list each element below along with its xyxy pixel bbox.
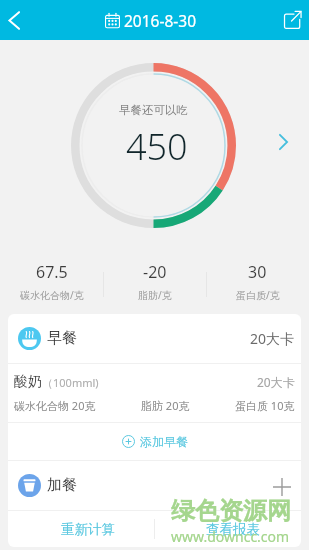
staticText: 早餐还可以吃 bbox=[119, 103, 188, 117]
staticText: 查看报表 bbox=[206, 521, 260, 538]
staticText: 蛋白质/克 bbox=[236, 288, 280, 302]
staticText: 碳水化合物 20克 bbox=[14, 398, 96, 413]
staticText: 加餐 bbox=[47, 476, 77, 495]
staticText: 绿色资源网 bbox=[171, 496, 291, 526]
staticText: 酸奶 bbox=[14, 373, 42, 391]
button[interactable]: Add snack bbox=[270, 475, 294, 499]
button[interactable]: 酸奶 bbox=[8, 364, 301, 422]
staticText: 脂肪/克 bbox=[138, 288, 172, 302]
staticText: 脂肪 20克 bbox=[141, 398, 190, 413]
button[interactable]: 添加早餐 bbox=[8, 423, 301, 460]
staticText: 20大卡 bbox=[250, 329, 295, 348]
staticText: 添加早餐 bbox=[140, 434, 188, 449]
staticText: 67.5 bbox=[36, 261, 68, 283]
button[interactable]: 加餐 bbox=[8, 461, 301, 510]
staticText: 重新计算 bbox=[61, 521, 115, 538]
staticText: 20大卡 bbox=[257, 374, 295, 390]
staticText: www.downcc.com bbox=[171, 527, 290, 546]
staticText: 2016-8-30 bbox=[124, 10, 197, 31]
button[interactable]: 重新计算 bbox=[8, 511, 154, 547]
button[interactable]: 早餐 bbox=[8, 314, 301, 363]
staticText: 蛋白质 10克 bbox=[235, 398, 295, 413]
staticText: 450 bbox=[126, 122, 188, 171]
staticText: 碳水化合物/克 bbox=[20, 288, 84, 302]
button[interactable]: Back bbox=[0, 0, 28, 40]
button[interactable]: Share bbox=[275, 0, 309, 40]
staticText: 早餐 bbox=[47, 329, 77, 348]
staticText: 30 bbox=[248, 261, 267, 283]
button[interactable]: Next day bbox=[269, 128, 297, 156]
staticText: -20 bbox=[143, 261, 167, 283]
staticText: （100mml) bbox=[42, 375, 99, 390]
button[interactable]: 查看报表 bbox=[155, 511, 301, 547]
